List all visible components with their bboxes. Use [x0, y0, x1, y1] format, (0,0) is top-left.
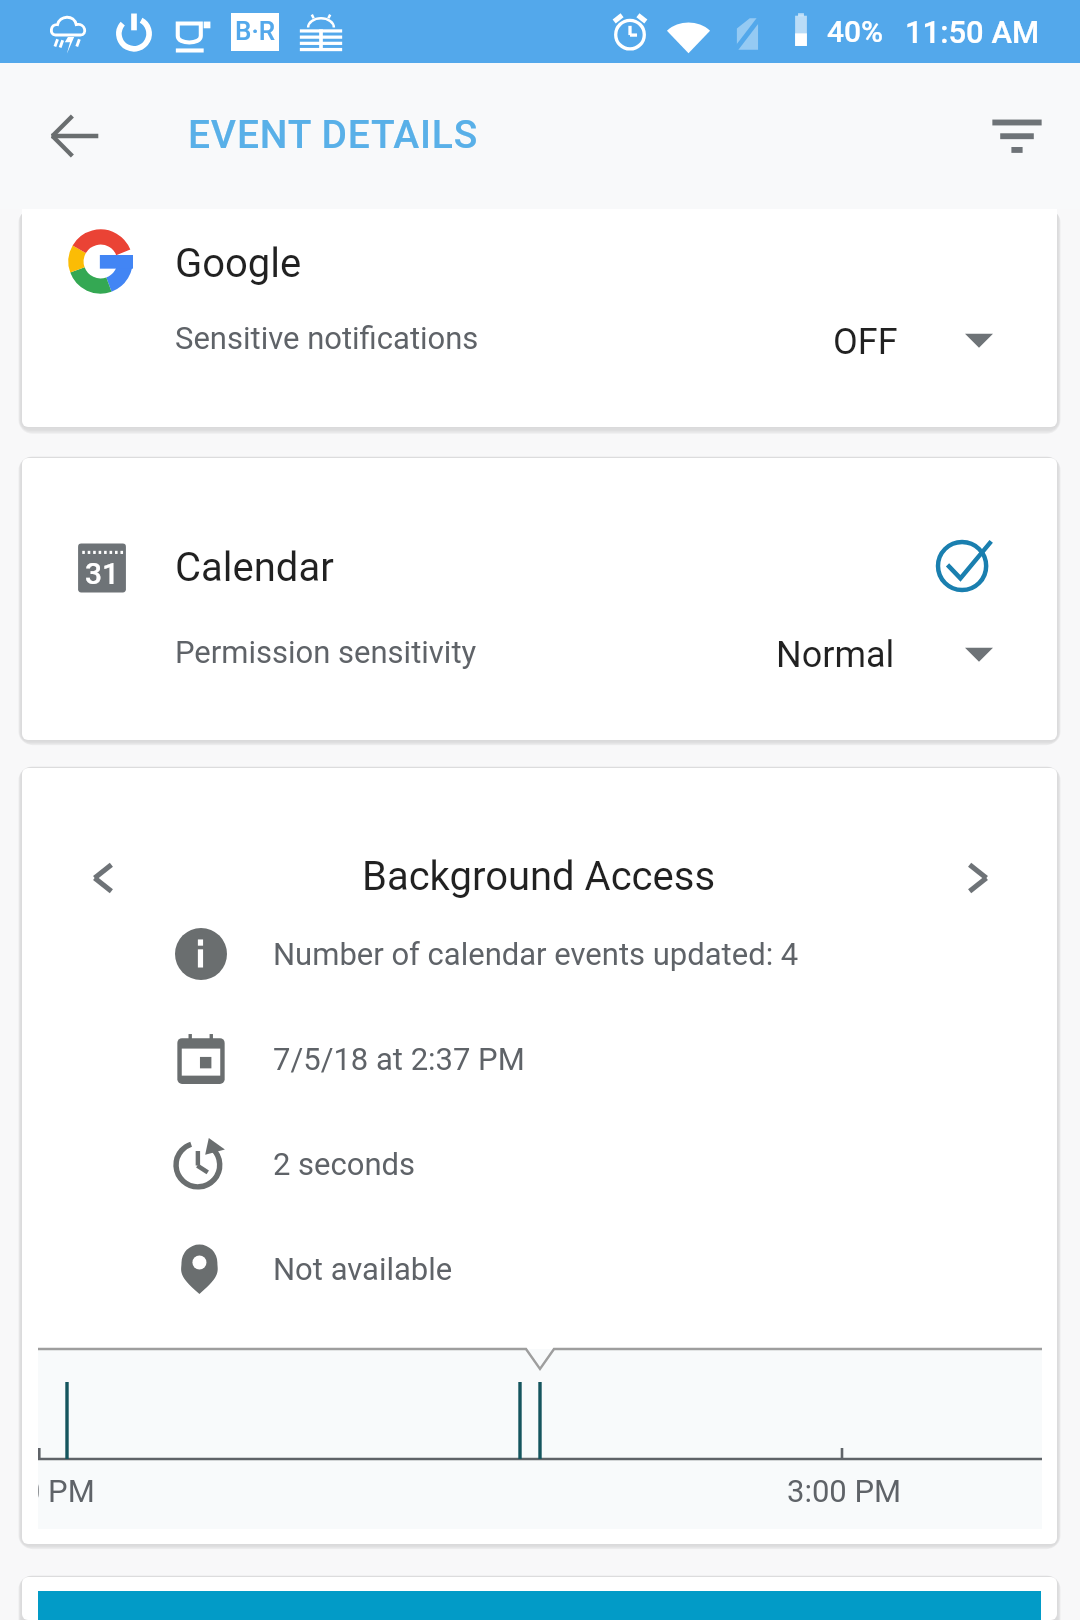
button[interactable] [22, 1577, 1057, 1620]
button[interactable]: 7/5/18 at 2:37 PM [22, 1007, 1057, 1111]
staticText: Sensitive notifications [175, 320, 479, 356]
staticText: 0 PM [38, 1473, 95, 1509]
button[interactable]: Not available [22, 1217, 1057, 1321]
staticText: 3:00 PM [787, 1473, 902, 1509]
staticText: Normal [776, 634, 895, 676]
staticText: Calendar [175, 544, 334, 591]
button[interactable]: 2 seconds [22, 1112, 1057, 1216]
staticText: Number of calendar events updated: 4 [273, 936, 799, 972]
button[interactable]: Next [946, 846, 1010, 910]
staticText: 11:50 AM [905, 14, 1040, 50]
staticText: OFF [833, 321, 898, 363]
staticText: EVENT DETAILS [188, 112, 479, 158]
staticText: B·R [235, 16, 275, 46]
button[interactable]: 31 [22, 458, 1057, 740]
button[interactable]: Previous [71, 846, 135, 910]
button[interactable]: Filter [971, 94, 1063, 186]
button[interactable]: Background Access [362, 853, 716, 900]
staticText: 7/5/18 at 2:37 PM [273, 1041, 525, 1077]
staticText: Permission sensitivity [175, 634, 477, 670]
staticText: 31 [85, 556, 120, 591]
button[interactable]: Google [22, 209, 1057, 427]
staticText: Background Access [362, 853, 716, 900]
button[interactable]: Number of calendar events updated: 4 [22, 902, 1057, 1006]
staticText: 2 seconds [273, 1146, 416, 1182]
staticText: 40% [827, 14, 884, 49]
button[interactable]: Back [28, 90, 120, 182]
staticText: Google [175, 240, 302, 287]
staticText: Not available [273, 1251, 453, 1287]
